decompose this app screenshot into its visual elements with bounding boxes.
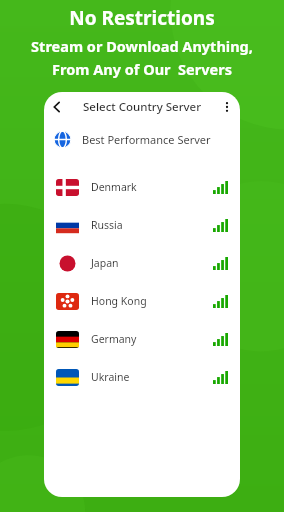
staticText: Ukraine (91, 370, 130, 384)
button[interactable]: Germany (44, 320, 240, 358)
staticText: Russia (91, 218, 123, 232)
button[interactable]: Best Performance Server (44, 122, 240, 156)
staticText: Germany (91, 332, 137, 346)
button[interactable]: Hong Kong (44, 282, 240, 320)
button[interactable]: Russia (44, 206, 240, 244)
button[interactable]: Ukraine (44, 358, 240, 396)
staticText: Japan (91, 256, 119, 270)
staticText: Stream or Download Anything, (31, 36, 253, 56)
button[interactable]: Denmark (44, 168, 240, 206)
staticText: No Restrictions (69, 5, 215, 31)
staticText: Denmark (91, 180, 137, 194)
staticText: Best Performance Server (82, 132, 211, 147)
staticText: From Any of Our Servers (52, 59, 232, 79)
button[interactable]: More options (214, 94, 240, 120)
staticText: Select Country Server (83, 99, 202, 115)
button[interactable]: Japan (44, 244, 240, 282)
button[interactable]: Back (44, 94, 70, 120)
staticText: Hong Kong (91, 294, 147, 308)
